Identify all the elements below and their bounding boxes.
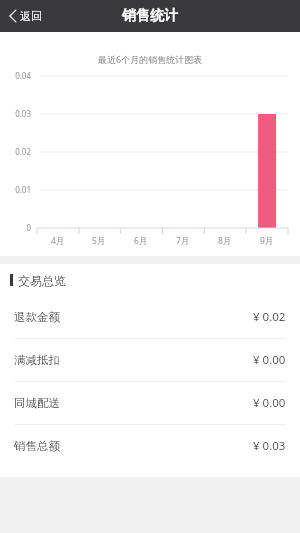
staticText: ¥ 0.02 (253, 309, 286, 325)
staticText: 5月 (92, 235, 106, 247)
staticText: 返回 (20, 9, 42, 23)
button[interactable]: 满减抵扣 (0, 339, 300, 381)
staticText: 销售统计 (122, 7, 178, 25)
staticText: 0.04 (15, 70, 31, 81)
staticText: 0 (26, 222, 31, 233)
button[interactable]: 同城配送 (0, 382, 300, 424)
staticText: ¥ 0.03 (253, 438, 286, 454)
button[interactable]: 返回 (0, 4, 52, 28)
staticText: 0.03 (15, 108, 31, 119)
staticText: 0.02 (15, 146, 31, 157)
staticText: 7月 (176, 235, 190, 247)
staticText: 满减抵扣 (14, 353, 60, 367)
button[interactable]: 退款金额 (0, 296, 300, 338)
staticText: ¥ 0.00 (253, 352, 286, 368)
button[interactable]: 销售总额 (0, 425, 300, 467)
staticText: 最近6个月的销售统计图表 (98, 53, 203, 65)
staticText: 交易总览 (18, 273, 66, 288)
staticText: 9月 (260, 235, 274, 247)
staticText: 同城配送 (14, 396, 60, 410)
staticText: 8月 (218, 235, 232, 247)
staticText: ¥ 0.00 (253, 395, 286, 411)
staticText: 退款金额 (14, 310, 60, 324)
staticText: 销售总额 (14, 439, 60, 453)
staticText: 6月 (134, 235, 148, 247)
staticText: 4月 (51, 235, 65, 247)
staticText: 0.01 (15, 184, 31, 195)
